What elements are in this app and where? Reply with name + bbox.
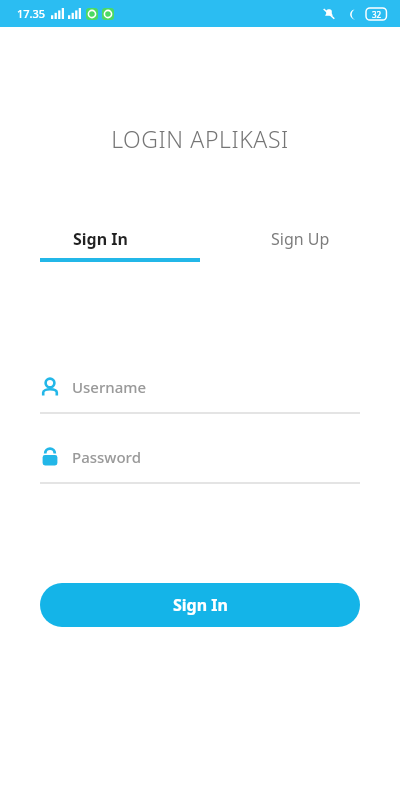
- staticText: 32: [372, 9, 382, 20]
- other: Username: [40, 377, 60, 397]
- button[interactable]: Sign In: [0, 216, 200, 262]
- button[interactable]: Sign In: [40, 583, 360, 627]
- button[interactable]: Password: [40, 442, 360, 484]
- staticText: Sign Up: [271, 228, 330, 250]
- other: Silent mode: [322, 7, 336, 21]
- other: Password: [40, 447, 60, 467]
- button[interactable]: Username: [40, 372, 360, 414]
- staticText: Username: [72, 377, 147, 397]
- staticText: 17.35: [17, 6, 46, 21]
- button[interactable]: Sign Up: [200, 216, 400, 262]
- staticText: Sign In: [173, 594, 228, 616]
- staticText: Password: [72, 447, 141, 467]
- staticText: Sign In: [73, 228, 128, 250]
- other: Do not disturb: [345, 8, 358, 21]
- staticText: LOGIN APLIKASI: [0, 123, 400, 154]
